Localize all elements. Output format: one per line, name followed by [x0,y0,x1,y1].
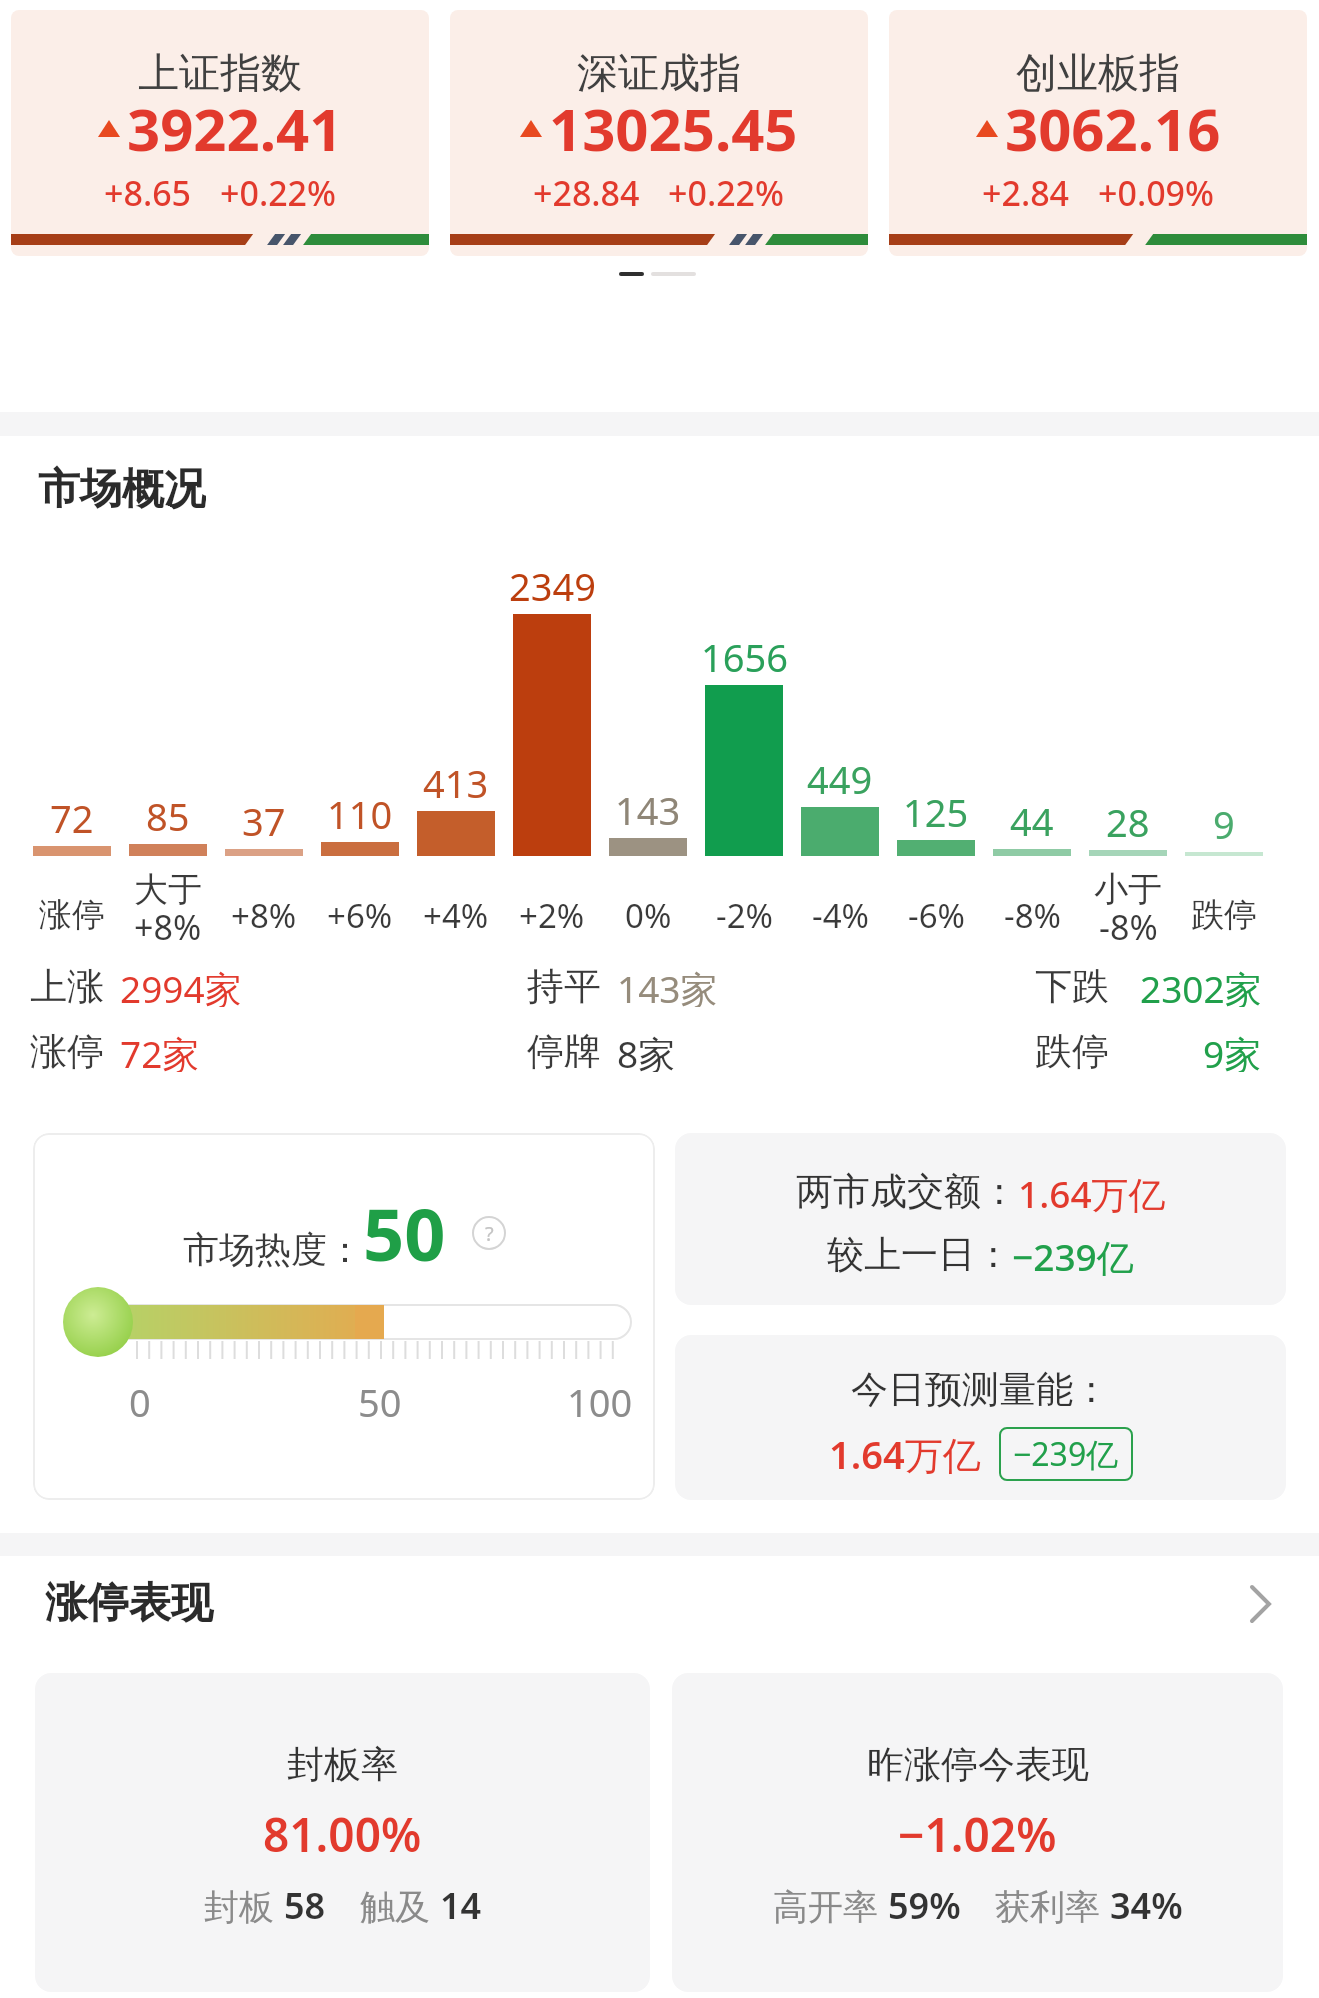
staticText: 2349 [509,560,596,602]
staticText: 81.00% [263,1803,422,1859]
button[interactable]: 深证成指 [450,10,868,256]
staticText: 50 [358,1376,402,1420]
staticText: 1656 [701,631,788,673]
staticText: +4% [423,893,489,938]
staticText: 34% [1110,1881,1183,1930]
staticText: 封板率 [287,1741,398,1788]
staticText: 9家 [1203,1028,1262,1072]
staticText: 触及 [360,1882,440,1930]
staticText: 封板 [204,1882,284,1930]
staticText: +8% [231,893,297,938]
staticText: 两市成交额： [796,1168,1018,1215]
staticText: ? [485,1220,494,1247]
button[interactable]: 市场热度： [33,1133,655,1500]
staticText: +8.65 [104,170,192,216]
staticText: 跌停 [1035,1028,1109,1072]
staticText: 下跌 [1035,963,1109,1007]
staticText: 37 [242,795,286,837]
staticText: 持平 [527,963,601,1007]
staticText: +0.22% [668,170,785,216]
staticText: 深证成指 [577,48,741,98]
staticText: 413 [423,757,489,799]
staticText: +2% [519,893,585,938]
staticText: 涨停表现 [45,1577,213,1630]
staticText: 28 [1106,796,1150,838]
staticText: +0.22% [220,170,337,216]
staticText: −239亿 [1013,1432,1119,1476]
button[interactable]: 两市成交额： [675,1133,1286,1305]
staticText: 100 [567,1376,633,1420]
staticText: -4% [812,893,869,938]
staticText: 125 [903,786,969,828]
button[interactable]: 涨停表现 [0,1572,1319,1636]
staticText: 3922.41 [127,89,343,153]
staticText: 143家 [617,963,718,1007]
staticText: -2% [716,893,773,938]
staticText: 昨涨停今表现 [867,1741,1089,1788]
staticText: 0 [129,1376,151,1420]
staticText: -6% [908,893,965,938]
staticText: +8% [134,904,202,942]
staticText: −239亿 [1012,1231,1134,1282]
staticText: 59% [888,1881,961,1930]
button[interactable]: 上证指数 [11,10,429,256]
staticText: 143 [615,784,681,826]
staticText: 3062.16 [1005,89,1221,153]
staticText: 58 [284,1881,326,1930]
staticText: +28.84 [533,170,640,216]
staticText: 大于 [134,868,202,906]
staticText: 小于 [1094,868,1162,906]
staticText: +0.09% [1098,170,1215,216]
staticText: 跌停 [1191,894,1257,936]
staticText: 上证指数 [138,48,302,98]
staticText: -8% [1099,904,1158,942]
staticText: 449 [807,753,873,795]
staticText: 市场概况 [38,463,206,515]
staticText: 涨停 [30,1028,104,1072]
staticText: 上涨 [30,963,104,1007]
button[interactable]: 封板率 [35,1673,650,1992]
staticText: 44 [1010,795,1054,837]
staticText: 50 [363,1184,446,1282]
staticText: 8家 [617,1028,676,1072]
staticText: 涨停 [39,894,105,936]
staticText: 较上一日： [827,1231,1012,1278]
staticText: 13025.45 [549,89,798,153]
staticText: −1.02% [898,1803,1057,1859]
staticText: 今日预测量能： [851,1366,1110,1413]
staticText: 2302家 [1140,963,1262,1007]
staticText: 85 [146,790,190,832]
staticText: +2.84 [982,170,1070,216]
staticText: 110 [327,788,393,830]
button[interactable]: 今日预测量能： [675,1335,1286,1500]
staticText: 1.64万亿 [829,1428,981,1480]
staticText: 2994家 [120,963,242,1007]
staticText: 1.64万亿 [1018,1168,1166,1219]
button[interactable]: 创业板指 [889,10,1307,256]
staticText: -8% [1004,893,1061,938]
staticText: 创业板指 [1016,48,1180,98]
staticText: 停牌 [527,1028,601,1072]
staticText: 获利率 [995,1882,1110,1930]
staticText: 72 [50,792,94,834]
staticText: +6% [327,893,393,938]
staticText: 72家 [120,1028,200,1072]
staticText: 9 [1213,798,1235,840]
button[interactable]: 昨涨停今表现 [672,1673,1283,1992]
staticText: 市场热度： [183,1227,363,1272]
staticText: 高开率 [773,1882,888,1930]
staticText: 0% [625,893,672,938]
staticText: 14 [440,1881,482,1930]
